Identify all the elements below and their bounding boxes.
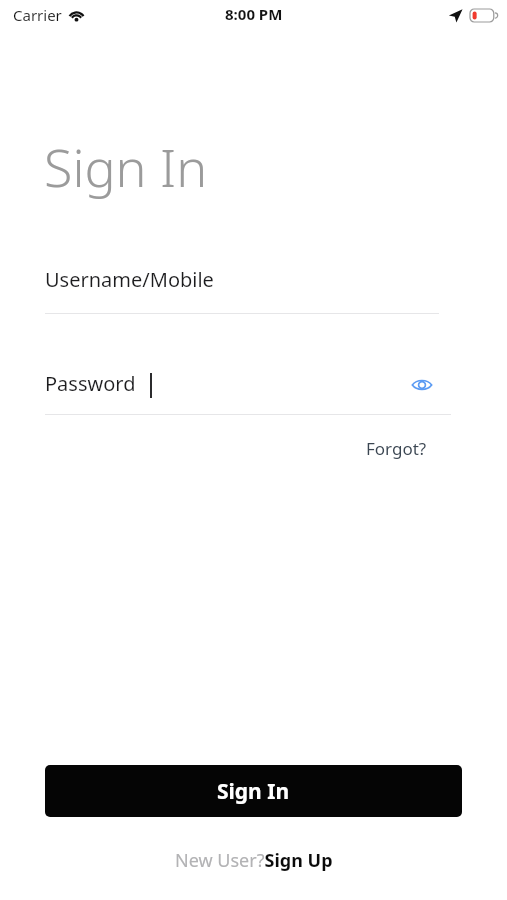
button[interactable]: New User?Sign Up: [169, 845, 339, 876]
button[interactable]: Forgot?: [362, 434, 431, 463]
staticText: Sign In: [217, 777, 290, 806]
button[interactable]: Sign In: [45, 765, 462, 817]
button[interactable]: Show password: [407, 370, 437, 400]
button[interactable]: Username/Mobile: [45, 262, 439, 314]
staticText: Username/Mobile: [45, 266, 214, 293]
staticText: New User?Sign Up: [175, 848, 333, 873]
staticText: Carrier: [13, 5, 62, 25]
other: Location: [448, 8, 463, 23]
staticText: Forgot?: [366, 437, 427, 460]
button[interactable]: Password: [45, 366, 451, 415]
staticText: Password: [45, 370, 136, 397]
staticText: Sign In: [44, 131, 208, 202]
staticText: 8:00 PM: [225, 4, 283, 24]
